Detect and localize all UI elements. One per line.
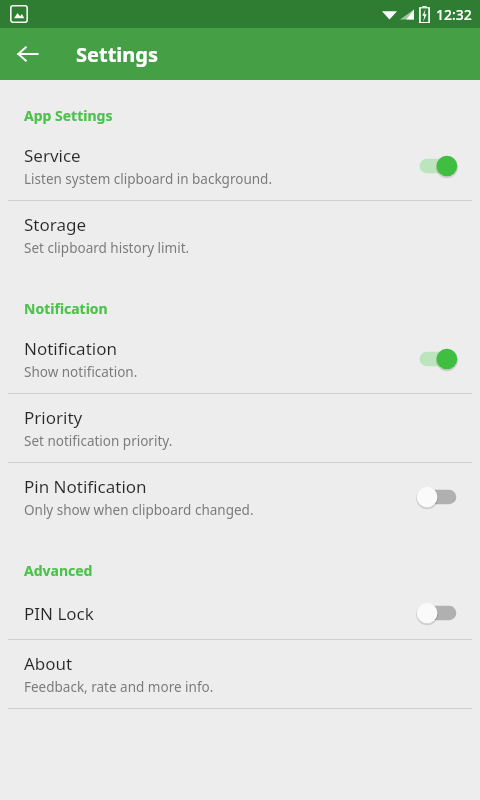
staticText: Feedback, rate and more info.: [24, 678, 214, 696]
button[interactable]: Back: [8, 34, 48, 74]
staticText: Pin Notification: [24, 475, 147, 498]
button[interactable]: Pin Notification: [0, 463, 480, 531]
staticText: Advanced: [24, 561, 93, 580]
staticText: App Settings: [24, 106, 113, 125]
staticText: Set notification priority.: [24, 432, 173, 450]
staticText: Settings: [76, 41, 158, 68]
staticText: Show notification.: [24, 363, 138, 381]
staticText: Only show when clipboard changed.: [24, 501, 254, 519]
staticText: PIN Lock: [24, 602, 94, 625]
button[interactable]: Off: [414, 482, 460, 512]
button[interactable]: PIN Lock: [0, 587, 480, 639]
button[interactable]: Off: [414, 598, 460, 628]
button[interactable]: Notification: [0, 325, 480, 393]
button[interactable]: Storage: [0, 201, 480, 269]
button[interactable]: Priority: [0, 394, 480, 462]
button[interactable]: Service: [0, 132, 480, 200]
staticText: Set clipboard history limit.: [24, 239, 190, 257]
staticText: Storage: [24, 213, 87, 236]
staticText: Notification: [24, 337, 117, 360]
button[interactable]: On: [414, 344, 460, 374]
button[interactable]: On: [414, 151, 460, 181]
staticText: Notification: [24, 299, 108, 318]
staticText: Service: [24, 144, 81, 167]
staticText: Priority: [24, 406, 83, 429]
staticText: About: [24, 652, 73, 675]
button[interactable]: About: [0, 640, 480, 708]
staticText: Listen system clipboard in background.: [24, 170, 272, 188]
staticText: 12:32: [436, 5, 472, 24]
